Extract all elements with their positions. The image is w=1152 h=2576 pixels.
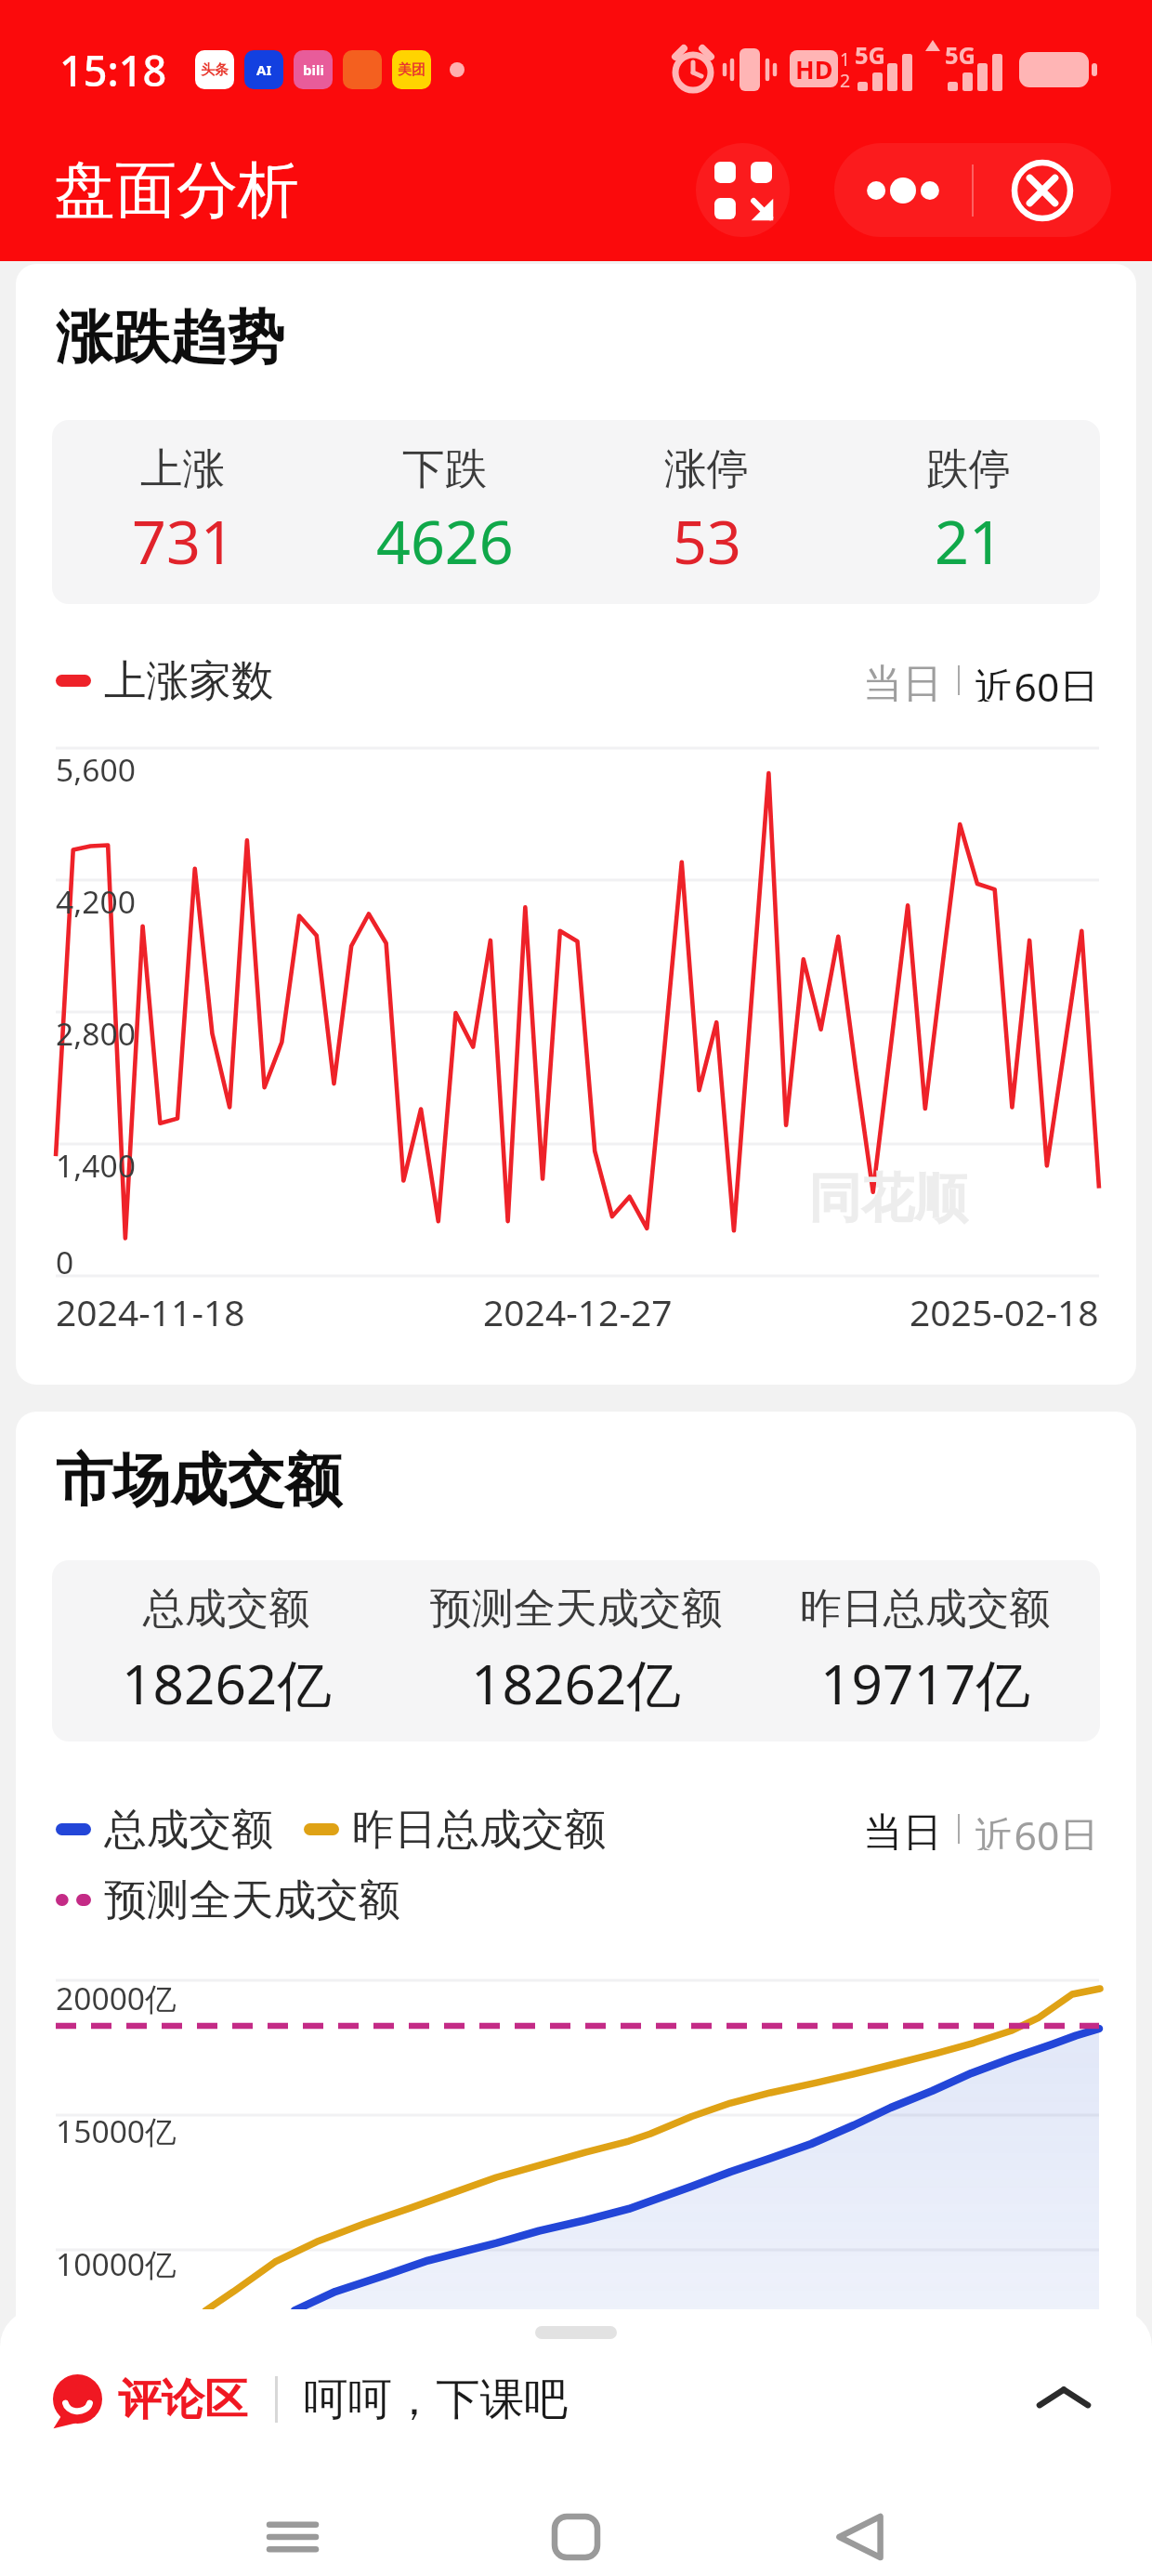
staticText: 15:18 bbox=[59, 42, 167, 99]
staticText: 5,600 bbox=[56, 748, 136, 791]
staticText: 20000亿 bbox=[56, 1977, 177, 2019]
staticText: 18262亿 bbox=[471, 1646, 681, 1720]
button[interactable]: 当日 bbox=[863, 1796, 943, 1861]
staticText: 跌停 bbox=[926, 442, 1012, 495]
staticText: 近60日 bbox=[975, 659, 1099, 702]
staticText: 盘面分析 bbox=[54, 151, 299, 229]
staticText: 1 bbox=[840, 46, 851, 72]
staticText: 2,800 bbox=[56, 1012, 136, 1055]
staticText: 731 bbox=[132, 500, 235, 582]
staticText: bili bbox=[303, 60, 324, 79]
button[interactable]: More bbox=[834, 143, 972, 237]
staticText: 2 bbox=[840, 68, 851, 93]
staticText: 涨跌趋势 bbox=[56, 302, 284, 374]
staticText: 头条 bbox=[201, 61, 229, 79]
staticText: 美团 bbox=[398, 61, 425, 79]
staticText: 5G bbox=[855, 39, 886, 72]
staticText: AI bbox=[256, 60, 272, 79]
button[interactable]: 近60日 bbox=[975, 648, 1099, 713]
staticText: 15000亿 bbox=[56, 2109, 177, 2152]
staticText: 昨日总成交额 bbox=[800, 1583, 1051, 1636]
staticText: 10000亿 bbox=[56, 2242, 177, 2285]
button[interactable]: Close bbox=[974, 143, 1111, 237]
staticText: 昨日总成交额 bbox=[352, 1803, 607, 1856]
staticText: 预测全天成交额 bbox=[430, 1583, 723, 1636]
button[interactable]: 评论区 bbox=[53, 2339, 1106, 2460]
staticText: 1,400 bbox=[56, 1144, 136, 1187]
button[interactable]: 上涨 bbox=[52, 442, 314, 582]
button[interactable]: 预测全天成交额 bbox=[401, 1583, 751, 1720]
staticText: 上涨家数 bbox=[104, 654, 274, 707]
staticText: 当日 bbox=[863, 1807, 943, 1850]
staticText: 上涨 bbox=[140, 442, 226, 495]
staticText: 总成交额 bbox=[104, 1803, 274, 1856]
staticText: 呵呵，下课吧 bbox=[304, 2372, 569, 2427]
staticText: 19717亿 bbox=[820, 1646, 1030, 1720]
staticText: 21 bbox=[935, 500, 1003, 582]
staticText: 18262亿 bbox=[122, 1646, 332, 1720]
staticText: 下跌 bbox=[402, 442, 488, 495]
staticText: 53 bbox=[673, 500, 741, 582]
button[interactable]: Expand comments bbox=[1022, 2358, 1106, 2441]
button[interactable]: Home bbox=[520, 2481, 632, 2576]
button[interactable]: 近60日 bbox=[975, 1796, 1099, 1861]
staticText: 评论区 bbox=[118, 2372, 248, 2427]
staticText: 2024-11-18 bbox=[56, 1287, 245, 1336]
staticText: 预测全天成交额 bbox=[104, 1873, 401, 1926]
staticText: 2025-02-18 bbox=[910, 1287, 1099, 1336]
staticText: 近60日 bbox=[975, 1807, 1099, 1850]
button[interactable]: 下跌 bbox=[314, 442, 576, 582]
staticText: 当日 bbox=[863, 659, 943, 702]
button[interactable]: 当日 bbox=[863, 648, 943, 713]
staticText: 涨停 bbox=[664, 442, 750, 495]
staticText: 同花顺 bbox=[808, 1165, 967, 1232]
button[interactable]: Recents bbox=[237, 2481, 348, 2576]
button[interactable]: 涨停 bbox=[576, 442, 838, 582]
staticText: 4,200 bbox=[56, 880, 136, 923]
staticText: 市场成交额 bbox=[56, 1445, 342, 1517]
button[interactable]: 跌停 bbox=[838, 442, 1100, 582]
staticText: 2024-12-27 bbox=[483, 1287, 673, 1336]
staticText: HD bbox=[795, 52, 833, 86]
button[interactable]: Back bbox=[804, 2481, 915, 2576]
staticText: 总成交额 bbox=[143, 1583, 310, 1636]
staticText: 0 bbox=[56, 1241, 74, 1283]
staticText: 5G bbox=[945, 39, 976, 72]
button[interactable]: 总成交额 bbox=[52, 1583, 401, 1720]
staticText: 4626 bbox=[376, 500, 514, 582]
button[interactable]: 昨日总成交额 bbox=[751, 1583, 1100, 1720]
button[interactable]: Mini program bbox=[696, 143, 790, 237]
